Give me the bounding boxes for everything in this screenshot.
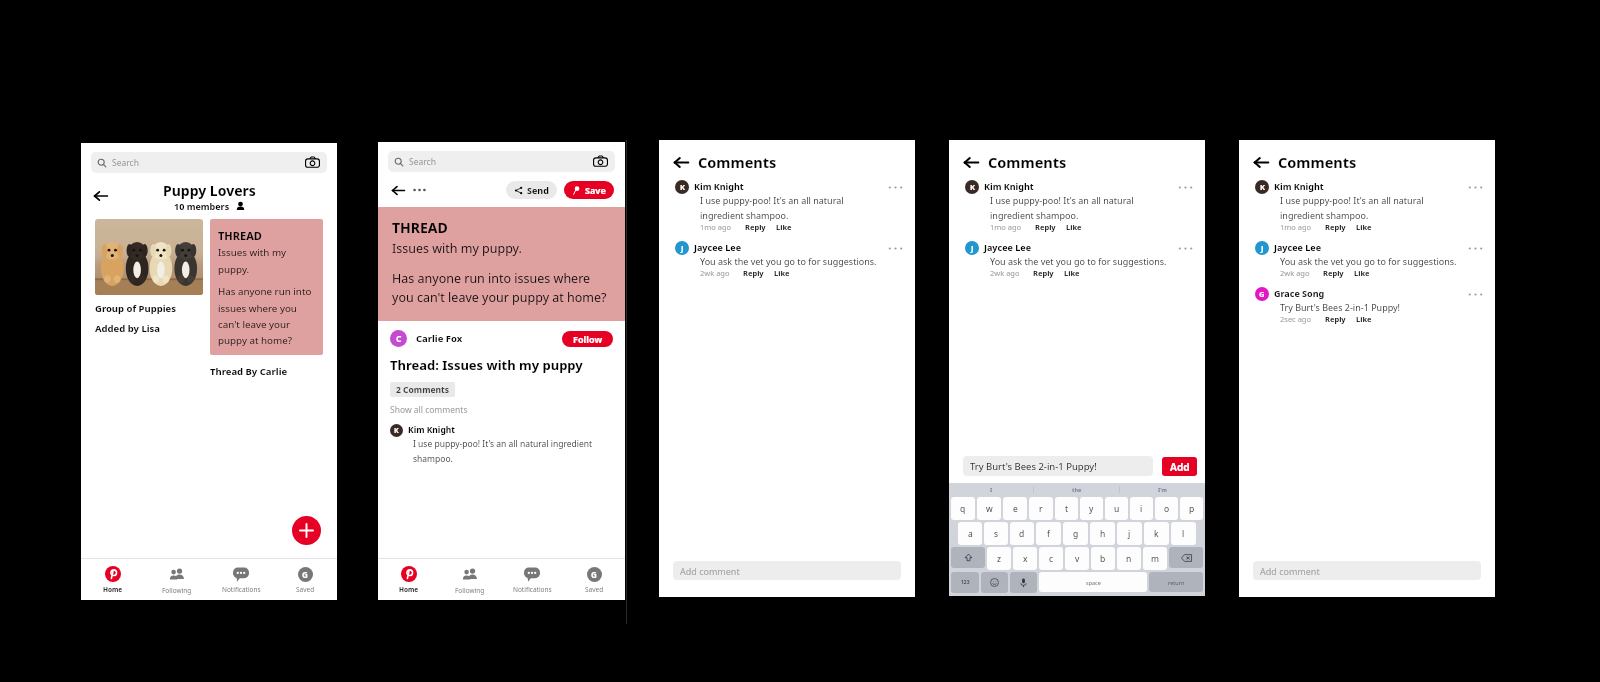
staticText: d	[1019, 528, 1025, 540]
button[interactable]: G	[273, 559, 337, 600]
button[interactable]: g	[1063, 522, 1088, 545]
staticText: J	[681, 243, 684, 253]
button[interactable]: space	[1039, 572, 1147, 592]
button[interactable]: Comment options	[1177, 182, 1193, 192]
button[interactable]: Back	[961, 152, 981, 172]
button[interactable]: Key	[1169, 547, 1203, 568]
button[interactable]: l	[1171, 522, 1196, 545]
staticText: Comments	[698, 152, 777, 172]
button[interactable]: Add	[1162, 457, 1197, 476]
button[interactable]: Reply	[745, 222, 766, 232]
button[interactable]: Like	[1066, 222, 1082, 232]
button[interactable]: Following	[439, 559, 501, 600]
button[interactable]: Reply	[1323, 268, 1344, 278]
staticText: Has anyone run into issues where you can…	[392, 270, 611, 306]
button[interactable]: o	[1155, 497, 1178, 520]
button[interactable]: Send	[506, 181, 557, 199]
button[interactable]: Key	[951, 547, 985, 568]
button[interactable]: G	[563, 559, 625, 600]
button[interactable]: Home	[81, 559, 145, 600]
button[interactable]: Back	[389, 181, 407, 199]
button[interactable]: Show all comments	[390, 404, 468, 416]
button[interactable]: Notifications	[209, 559, 273, 600]
button[interactable]: Home	[378, 559, 439, 600]
button[interactable]: Back	[671, 152, 691, 172]
button[interactable]: a	[958, 522, 982, 545]
button[interactable]: Reply	[743, 268, 764, 278]
button[interactable]: t	[1055, 497, 1078, 520]
button[interactable]: Comment options	[887, 243, 903, 253]
button[interactable]: Like	[774, 268, 790, 278]
button[interactable]: I'm	[1120, 483, 1205, 495]
button[interactable]: Following	[145, 559, 209, 600]
button[interactable]: C	[390, 330, 407, 347]
button[interactable]: Reply	[1035, 222, 1056, 232]
button[interactable]: Reply	[1325, 222, 1346, 232]
button[interactable]: j	[1117, 522, 1142, 545]
button[interactable]: Back	[1251, 152, 1271, 172]
staticText: Saved	[296, 585, 315, 594]
staticText: Notifications	[513, 585, 552, 594]
button[interactable]: Like	[776, 222, 792, 232]
button[interactable]: s	[984, 522, 1008, 545]
button[interactable]: h	[1090, 522, 1115, 545]
button[interactable]: w	[977, 497, 1001, 520]
button[interactable]: i	[1130, 497, 1153, 520]
button[interactable]: x	[1013, 547, 1037, 570]
button[interactable]: v	[1065, 547, 1089, 570]
button[interactable]: More options	[412, 184, 426, 196]
button[interactable]: I	[949, 483, 1033, 495]
staticText: Kim Knight	[408, 424, 455, 436]
button[interactable]: Comment options	[887, 182, 903, 192]
button[interactable]	[95, 219, 203, 295]
button[interactable]: Add comment	[1253, 561, 1481, 580]
button[interactable]: the	[1034, 483, 1119, 495]
button[interactable]: Reply	[1033, 268, 1054, 278]
button[interactable]: Search	[91, 152, 327, 173]
button[interactable]: c	[1039, 547, 1063, 570]
staticText: You ask the vet you go to for suggestion…	[700, 255, 877, 267]
button[interactable]: Search	[388, 151, 615, 172]
button[interactable]: Comment options	[1467, 289, 1483, 299]
staticText: Jaycee Lee	[984, 241, 1032, 253]
staticText: j	[1128, 528, 1131, 540]
button[interactable]: r	[1029, 497, 1053, 520]
button[interactable]: p	[1180, 497, 1203, 520]
staticText: p	[1189, 503, 1195, 515]
button[interactable]: Key	[1010, 572, 1037, 593]
button[interactable]: f	[1036, 522, 1061, 545]
button[interactable]: Back	[91, 186, 111, 206]
button[interactable]: Save	[564, 181, 614, 199]
button[interactable]: THREAD	[210, 219, 323, 355]
button[interactable]: return	[1149, 572, 1203, 592]
button[interactable]: Comment options	[1467, 243, 1483, 253]
button[interactable]: Create	[292, 516, 321, 545]
button[interactable]: Like	[1356, 314, 1372, 324]
button[interactable]: m	[1143, 547, 1167, 570]
button[interactable]: Key	[981, 572, 1008, 593]
button[interactable]: Comment options	[1467, 182, 1483, 192]
button[interactable]: 2 Comments	[390, 382, 455, 397]
button[interactable]: Add comment	[673, 561, 901, 580]
button[interactable]: Like	[1356, 222, 1372, 232]
button[interactable]: Comment options	[1177, 243, 1193, 253]
button[interactable]: k	[1144, 522, 1169, 545]
button[interactable]: u	[1105, 497, 1128, 520]
button[interactable]: z	[987, 547, 1011, 570]
button[interactable]: Reply	[1325, 314, 1346, 324]
button[interactable]: n	[1117, 547, 1141, 570]
button[interactable]: y	[1080, 497, 1103, 520]
button[interactable]: Like	[1354, 268, 1370, 278]
button[interactable]: d	[1010, 522, 1034, 545]
button[interactable]: Notifications	[501, 559, 563, 600]
button[interactable]: Like	[1064, 268, 1080, 278]
staticText: You ask the vet you go to for suggestion…	[990, 255, 1167, 267]
staticText: l	[1182, 528, 1185, 540]
staticText: Following	[162, 586, 192, 595]
button[interactable]: b	[1091, 547, 1115, 570]
button[interactable]: e	[1003, 497, 1027, 520]
button[interactable]: q	[951, 497, 975, 520]
button[interactable]: Key	[951, 572, 979, 593]
button[interactable]: Try Burt's Bees 2-in-1 Puppy!	[963, 456, 1153, 476]
button[interactable]: Follow	[562, 331, 613, 347]
